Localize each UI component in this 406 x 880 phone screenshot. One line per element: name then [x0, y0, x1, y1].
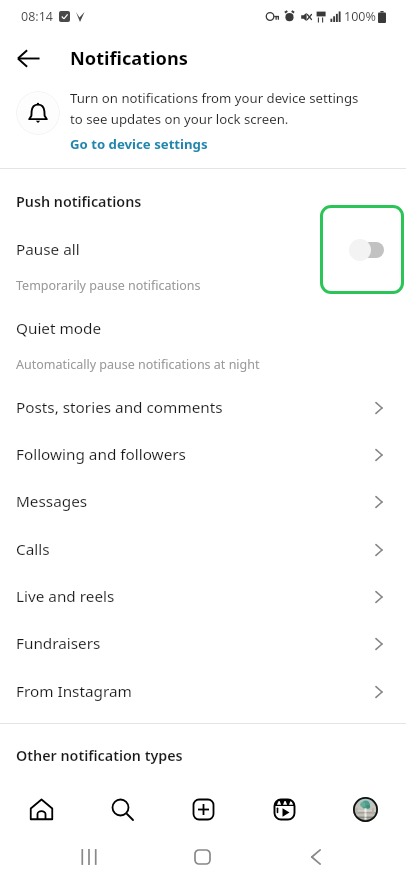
button[interactable]: Posts, stories and comments	[0, 384, 406, 431]
staticText: Turn on notifications from your device s…	[70, 89, 359, 107]
staticText: Automatically pause notifications at nig…	[16, 356, 260, 373]
button[interactable]: Following and followers	[0, 431, 406, 478]
staticText: Calls	[16, 539, 50, 560]
staticText: Fundraisers	[16, 633, 101, 654]
staticText: 08:14	[21, 8, 53, 25]
button[interactable]: Live and reels	[0, 573, 406, 620]
staticText: Other notification types	[16, 746, 183, 765]
staticText: Messages	[16, 491, 88, 512]
staticText: Notifications	[70, 46, 188, 71]
staticText: Quiet mode	[16, 318, 102, 339]
staticText: Temporarily pause notifications	[16, 277, 201, 294]
button[interactable]: From Instagram	[0, 668, 406, 715]
button[interactable]: Back	[6, 36, 50, 80]
button[interactable]: Calls	[0, 526, 406, 573]
staticText: Posts, stories and comments	[16, 397, 223, 418]
button[interactable]: Profile	[342, 786, 388, 832]
button[interactable]: Reels	[261, 786, 307, 832]
staticText: Following and followers	[16, 444, 186, 465]
button[interactable]: Pause all toggle	[320, 205, 404, 294]
staticText: 100%	[344, 8, 376, 25]
staticText: Live and reels	[16, 586, 115, 607]
staticText: Push notifications	[16, 192, 142, 211]
staticText: Pause all	[16, 239, 80, 260]
button[interactable]: Fundraisers	[0, 620, 406, 667]
button[interactable]: Search	[99, 786, 145, 832]
button[interactable]: Create	[180, 786, 226, 832]
staticText: to see updates on your lock screen.	[70, 110, 289, 128]
button[interactable]: Home	[18, 786, 64, 832]
staticText: From Instagram	[16, 681, 132, 702]
button[interactable]: Go to device settings	[70, 135, 208, 153]
button[interactable]: Messages	[0, 478, 406, 525]
